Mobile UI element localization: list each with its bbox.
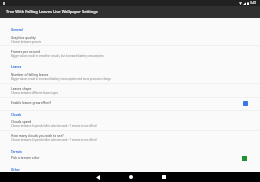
staticText: Bigger values result in increased batter… (11, 77, 111, 81)
staticText: Graphics quality (11, 36, 36, 40)
staticText: Leaves (11, 65, 22, 69)
staticText: Choose between different leaves types (11, 91, 59, 95)
staticText: Clouds (11, 113, 22, 117)
staticText: Leaves shape (11, 87, 32, 91)
staticText: Choose between 4 speeds (after selection… (11, 124, 97, 128)
button[interactable]: Recent apps (147, 172, 180, 182)
staticText: Bigger values result in smoother visuals… (11, 54, 104, 58)
staticText: How many clouds you wish to see? (11, 134, 64, 138)
button[interactable] (0, 152, 260, 164)
staticText: Choose between 4 speeds (after selection… (11, 138, 97, 142)
button[interactable] (0, 46, 260, 60)
button[interactable]: Home (114, 172, 147, 182)
staticText: Frames per second (11, 50, 40, 54)
staticText: 3:41 (250, 1, 257, 5)
button[interactable] (0, 131, 260, 145)
staticText: Terrain (11, 150, 22, 154)
staticText: Choose between presets (11, 40, 41, 44)
staticText: General (11, 28, 23, 32)
button[interactable] (0, 69, 260, 83)
staticText: Number of falling leaves (11, 73, 49, 77)
button[interactable] (0, 84, 260, 98)
button[interactable] (0, 117, 260, 131)
button[interactable] (0, 32, 260, 46)
staticText: Clouds speed (11, 120, 32, 124)
staticText: Tree With Falling Leaves Live Wallpaper … (6, 9, 98, 14)
button[interactable]: Back (81, 172, 114, 182)
staticText: Enable leaves grow effect? (11, 101, 52, 105)
staticText: Pick a terrain color (11, 156, 40, 160)
button[interactable] (0, 97, 260, 109)
staticText: Other (11, 168, 20, 172)
